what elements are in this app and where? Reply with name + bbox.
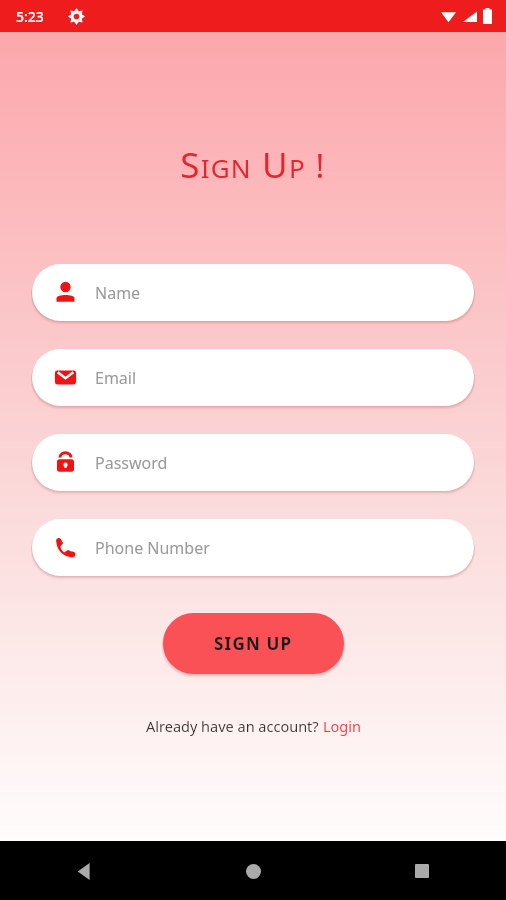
button[interactable]: Already have an account? <box>140 713 367 739</box>
staticText: Name <box>95 282 141 304</box>
button[interactable]: Email <box>32 349 474 406</box>
staticText: 5:23 <box>16 7 44 26</box>
staticText: Phone Number <box>95 537 210 559</box>
button[interactable]: Recent apps <box>400 849 444 893</box>
button[interactable]: SIGN UP <box>163 613 344 674</box>
button[interactable]: Phone Number <box>32 519 474 576</box>
other: Settings <box>68 8 85 25</box>
staticText: Password <box>95 452 168 474</box>
button[interactable]: Password <box>32 434 474 491</box>
button[interactable]: Back <box>62 849 106 893</box>
staticText: Email <box>95 367 137 389</box>
staticText: Login <box>323 716 361 736</box>
button[interactable]: Name <box>32 264 474 321</box>
staticText: SIGN UP ! <box>180 141 326 189</box>
button[interactable]: Home <box>231 849 275 893</box>
staticText: SIGN UP <box>214 632 293 655</box>
staticText: Already have an account? <box>146 716 323 736</box>
